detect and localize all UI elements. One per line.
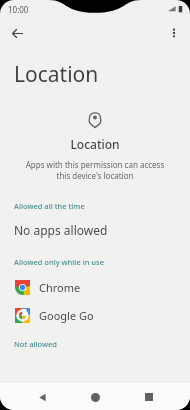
button[interactable]: Home <box>83 385 107 409</box>
button[interactable]: Back <box>30 385 54 409</box>
button[interactable]: More options <box>163 22 185 44</box>
button[interactable]: No apps allowed <box>0 217 190 243</box>
staticText: Allowed all the time <box>14 201 85 211</box>
staticText: Location <box>0 136 190 152</box>
staticText: Not allowed <box>14 339 58 349</box>
button[interactable]: Google Go <box>0 301 190 329</box>
button[interactable]: Chrome <box>0 273 190 301</box>
staticText: Apps with this permission can access thi… <box>14 159 176 181</box>
staticText: Google Go <box>39 308 94 323</box>
button[interactable]: Back <box>6 22 28 44</box>
staticText: No apps allowed <box>14 222 108 238</box>
button[interactable]: Recents <box>137 385 161 409</box>
staticText: Location <box>14 60 99 89</box>
staticText: Chrome <box>39 280 81 295</box>
staticText: Allowed only while in use <box>14 257 104 267</box>
staticText: 10:00 <box>8 4 29 15</box>
